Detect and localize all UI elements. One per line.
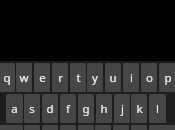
staticText: q xyxy=(3,70,11,86)
staticText: o xyxy=(146,70,153,86)
staticText: u xyxy=(109,70,117,86)
staticText: s xyxy=(29,101,35,117)
button[interactable]: f xyxy=(60,94,76,123)
button[interactable]: m xyxy=(131,125,147,130)
button[interactable]: n xyxy=(113,125,129,130)
button[interactable]: z xyxy=(24,125,40,130)
button[interactable]: x xyxy=(42,125,58,130)
staticText: h xyxy=(100,101,108,117)
button[interactable]: k xyxy=(131,94,147,123)
staticText: r xyxy=(58,70,63,86)
button[interactable]: p xyxy=(159,63,175,92)
button[interactable]: v xyxy=(78,125,94,130)
button[interactable]: d xyxy=(42,94,58,123)
button[interactable]: j xyxy=(114,94,130,123)
button[interactable]: u xyxy=(105,63,121,92)
staticText: e xyxy=(39,70,46,86)
button[interactable]: b xyxy=(95,125,111,130)
button[interactable]: i xyxy=(123,63,139,92)
button[interactable]: t xyxy=(70,63,86,92)
button[interactable]: w xyxy=(16,63,32,92)
button[interactable]: q xyxy=(0,63,15,92)
staticText: w xyxy=(19,70,29,86)
button[interactable]: h xyxy=(96,94,112,123)
button[interactable]: a xyxy=(6,94,23,123)
staticText: g xyxy=(82,101,90,117)
button[interactable]: c xyxy=(60,125,76,130)
staticText: d xyxy=(46,101,54,117)
button[interactable]: y xyxy=(87,63,103,92)
staticText: p xyxy=(164,70,172,86)
staticText: f xyxy=(66,101,70,117)
staticText: a xyxy=(11,101,18,117)
button[interactable]: l xyxy=(149,94,166,123)
staticText: j xyxy=(121,101,124,117)
button[interactable]: g xyxy=(78,94,94,123)
button[interactable]: r xyxy=(52,63,68,92)
staticText: l xyxy=(156,101,159,117)
button[interactable]: o xyxy=(141,63,157,92)
staticText: i xyxy=(130,70,133,86)
staticText: t xyxy=(76,70,81,86)
button[interactable]: s xyxy=(24,94,40,123)
staticText: y xyxy=(92,70,98,86)
button[interactable]: e xyxy=(34,63,50,92)
staticText: k xyxy=(136,101,143,117)
